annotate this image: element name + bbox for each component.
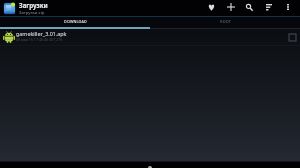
- button[interactable]: Favorite: [202, 0, 221, 17]
- button[interactable]: More options: [278, 0, 297, 17]
- staticText: Загрузки: [19, 1, 48, 9]
- staticText: Загрузки.zip: [19, 9, 45, 15]
- button[interactable]: DOWNLOAD: [0, 17, 150, 29]
- staticText: ROOT: [220, 19, 231, 24]
- button[interactable]: Search: [240, 0, 259, 17]
- button[interactable]: Add: [221, 0, 240, 17]
- staticText: gamekiller_3.01.apk: [16, 30, 67, 37]
- button[interactable]: Select file: [285, 30, 299, 44]
- button[interactable]: ROOT: [150, 17, 300, 29]
- button[interactable]: Up: [1, 0, 18, 17]
- button[interactable]: Sort: [259, 0, 278, 17]
- staticText: 08 мая 15 17:40:40 457,27K: [16, 37, 63, 42]
- staticText: DOWNLOAD: [64, 19, 87, 24]
- button[interactable]: gamekiller_3.01.apk: [0, 29, 300, 45]
- button[interactable]: Home: [148, 166, 152, 168]
